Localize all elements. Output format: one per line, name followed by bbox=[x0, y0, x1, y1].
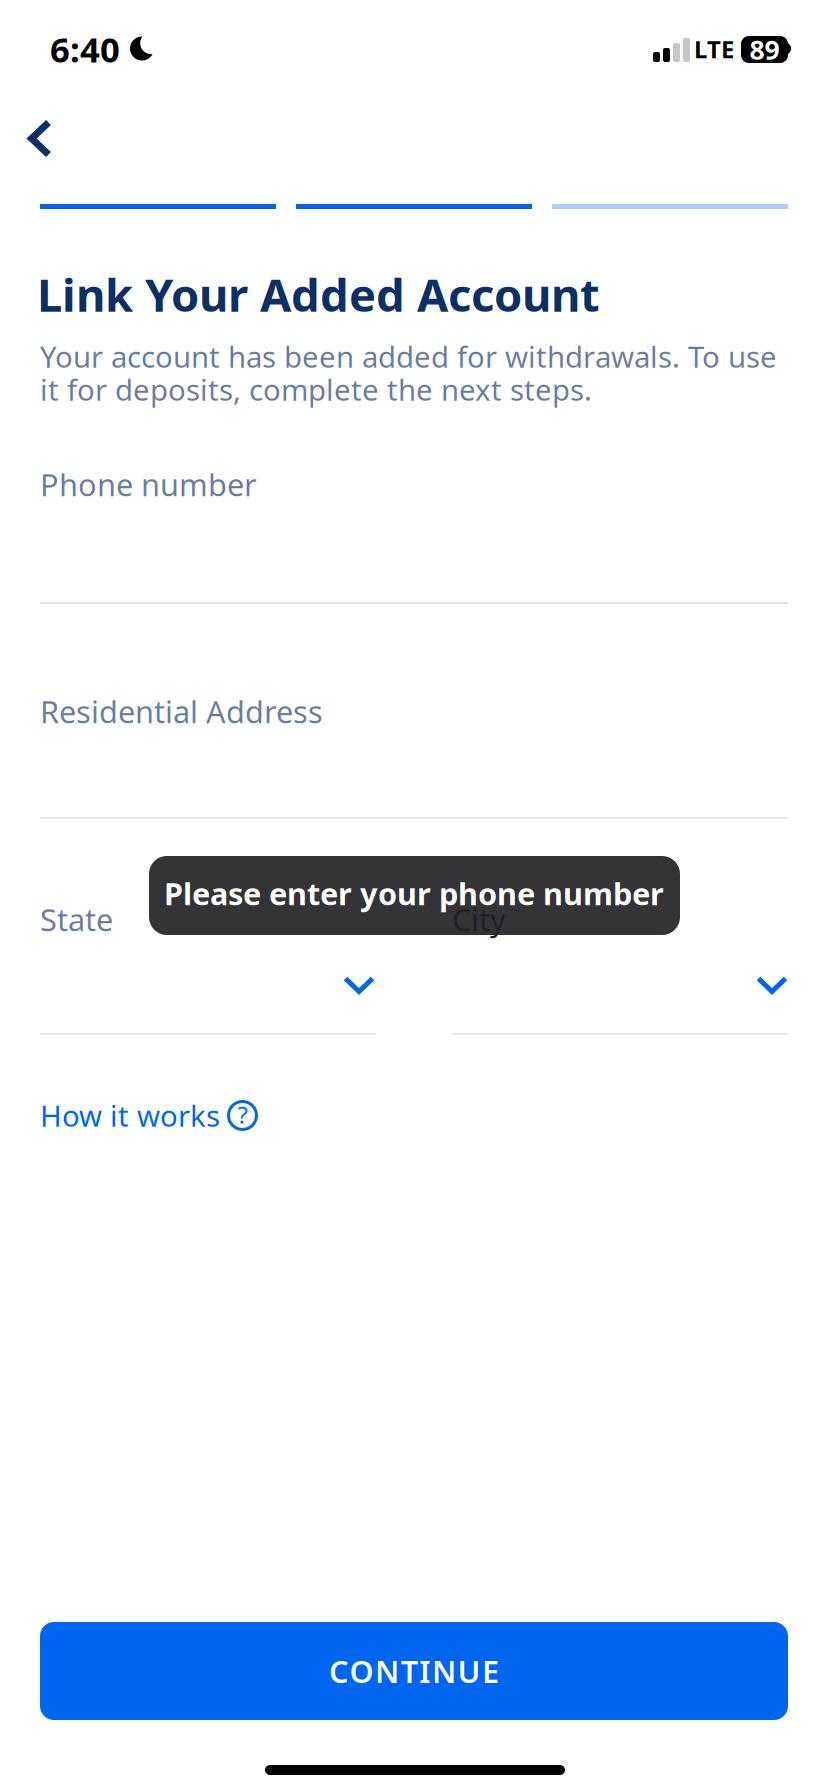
staticText: 6:40 bbox=[50, 26, 120, 72]
button[interactable]: Back bbox=[14, 105, 66, 172]
staticText: How it works bbox=[40, 1096, 220, 1135]
staticText: 89 bbox=[749, 32, 779, 67]
staticText: Residential Address bbox=[40, 691, 323, 732]
staticText: ? bbox=[237, 1098, 247, 1130]
staticText: LTE bbox=[694, 33, 734, 65]
staticText: it for deposits, complete the next steps… bbox=[40, 370, 592, 409]
button[interactable]: How it works bbox=[40, 1096, 258, 1135]
staticText: Please enter your phone number bbox=[164, 873, 664, 914]
button[interactable]: Residential Address bbox=[40, 682, 788, 819]
staticText: Your account has been added for withdraw… bbox=[40, 337, 777, 376]
staticText: State bbox=[40, 899, 113, 940]
button[interactable]: Phone number bbox=[40, 455, 788, 604]
button[interactable]: State bbox=[40, 890, 376, 1035]
staticText: CONTINUE bbox=[329, 1651, 499, 1691]
staticText: Link Your Added Account bbox=[37, 264, 600, 324]
staticText: City bbox=[452, 899, 506, 940]
button[interactable]: City bbox=[452, 890, 788, 1035]
staticText: Phone number bbox=[40, 464, 257, 505]
button[interactable]: CONTINUE bbox=[40, 1622, 788, 1720]
